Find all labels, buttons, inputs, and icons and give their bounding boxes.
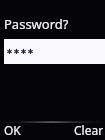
staticText: Password? — [4, 15, 69, 33]
other: Password, 4 characters entered — [6, 45, 34, 59]
button[interactable]: Clear — [68, 120, 105, 140]
button[interactable]: Password, 4 characters entered — [4, 39, 105, 64]
staticText: OK — [4, 122, 21, 138]
staticText: Clear — [74, 122, 104, 138]
button[interactable]: OK — [0, 120, 27, 140]
